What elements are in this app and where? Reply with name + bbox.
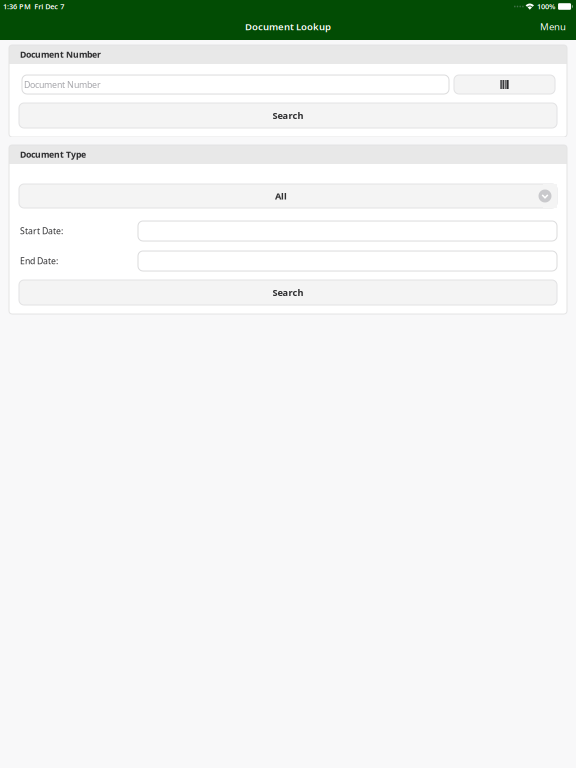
staticText: Document Number: [24, 78, 101, 90]
button[interactable]: Menu: [530, 15, 576, 38]
staticText: Fri Dec 7: [34, 1, 64, 11]
staticText: Search: [272, 286, 303, 299]
staticText: Document Lookup: [245, 20, 331, 33]
button[interactable]: Search: [19, 280, 557, 305]
staticText: 1:36 PM: [3, 1, 31, 11]
staticText: End Date:: [20, 255, 58, 267]
staticText: Menu: [540, 20, 566, 33]
staticText: Search: [272, 109, 303, 122]
staticText: Start Date:: [20, 225, 63, 237]
button[interactable]: All: [19, 184, 557, 208]
staticText: All: [275, 190, 287, 202]
button[interactable]: Search: [19, 103, 557, 128]
staticText: Document Number: [20, 49, 101, 60]
staticText: 100%: [537, 1, 555, 11]
staticText: Document Type: [20, 149, 86, 160]
button[interactable]: Scan barcode: [454, 75, 555, 94]
